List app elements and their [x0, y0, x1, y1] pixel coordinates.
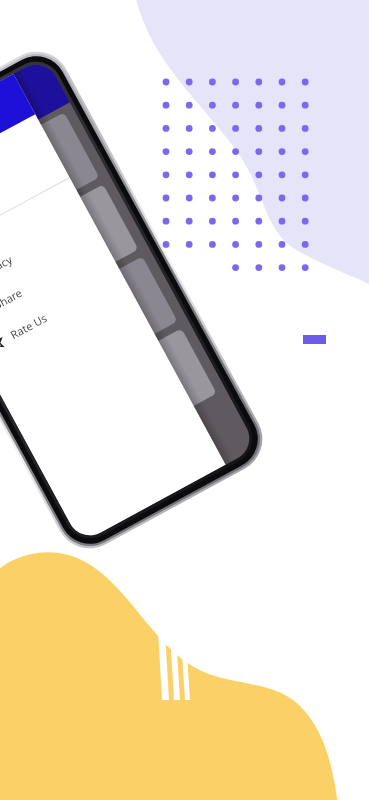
button[interactable]: News Paper app showcase: [0, 0, 369, 800]
